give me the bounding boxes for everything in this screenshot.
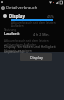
staticText: Detailverbrauch — [6, 5, 38, 11]
staticText: Akkuverbrauch seit dem letzten vollstand… — [4, 39, 64, 47]
staticText: Display — [9, 13, 25, 19]
staticText: Display — [30, 55, 43, 60]
staticText: Display: Verhalten und Helligkeit anpass… — [4, 44, 64, 54]
staticText: Nutzung — [4, 28, 17, 32]
staticText: Aufladen — [11, 24, 24, 28]
staticText: Hinweis anzeigen — [4, 48, 32, 53]
staticText: Akkuverbrauch seit dem letzten — [11, 21, 56, 25]
staticText: Laufzeit — [4, 31, 20, 37]
staticText: 4 h 2 Min. — [33, 32, 50, 37]
staticText: 45% — [47, 14, 54, 19]
button[interactable]: Display — [20, 53, 52, 61]
button[interactable]: Detailverbrauch — [1, 5, 38, 11]
